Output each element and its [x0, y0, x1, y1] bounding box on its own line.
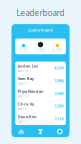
staticText: 3,110	[54, 116, 63, 121]
button[interactable]: Jordan Lee	[15, 62, 66, 74]
button[interactable]: Priya Nandan	[15, 87, 66, 100]
staticText: 4,210	[54, 65, 63, 70]
button[interactable]: Settings	[50, 125, 69, 138]
staticText: Priya Nandan	[18, 89, 44, 94]
staticText: Level 11	[18, 82, 29, 85]
button[interactable]: Chris Vu	[15, 100, 66, 112]
button[interactable]: Sam Ray	[15, 74, 66, 87]
staticText: 7,480	[36, 48, 45, 52]
staticText: Leaderboard	[28, 27, 53, 32]
staticText: Sam Ray	[18, 76, 34, 81]
button[interactable]: Dana Kim	[15, 112, 66, 125]
staticText: 5,120	[19, 48, 28, 52]
button[interactable]: Home	[11, 125, 31, 138]
staticText: 4,930	[53, 48, 62, 52]
staticText: 3,980	[54, 78, 63, 83]
staticText: Jordan Lee	[18, 63, 38, 68]
staticText: Level 12	[18, 69, 29, 73]
staticText: 3,300	[54, 103, 63, 109]
staticText: Level 9	[18, 120, 27, 123]
staticText: Chris Vu	[18, 101, 35, 107]
staticText: Level 9	[18, 107, 27, 111]
staticText: Leaderboard	[16, 7, 64, 18]
button[interactable]: Leaderboard	[31, 125, 50, 138]
staticText: Dana Kim	[18, 114, 37, 119]
staticText: Level 10	[18, 94, 29, 98]
staticText: 3,640	[54, 91, 63, 96]
